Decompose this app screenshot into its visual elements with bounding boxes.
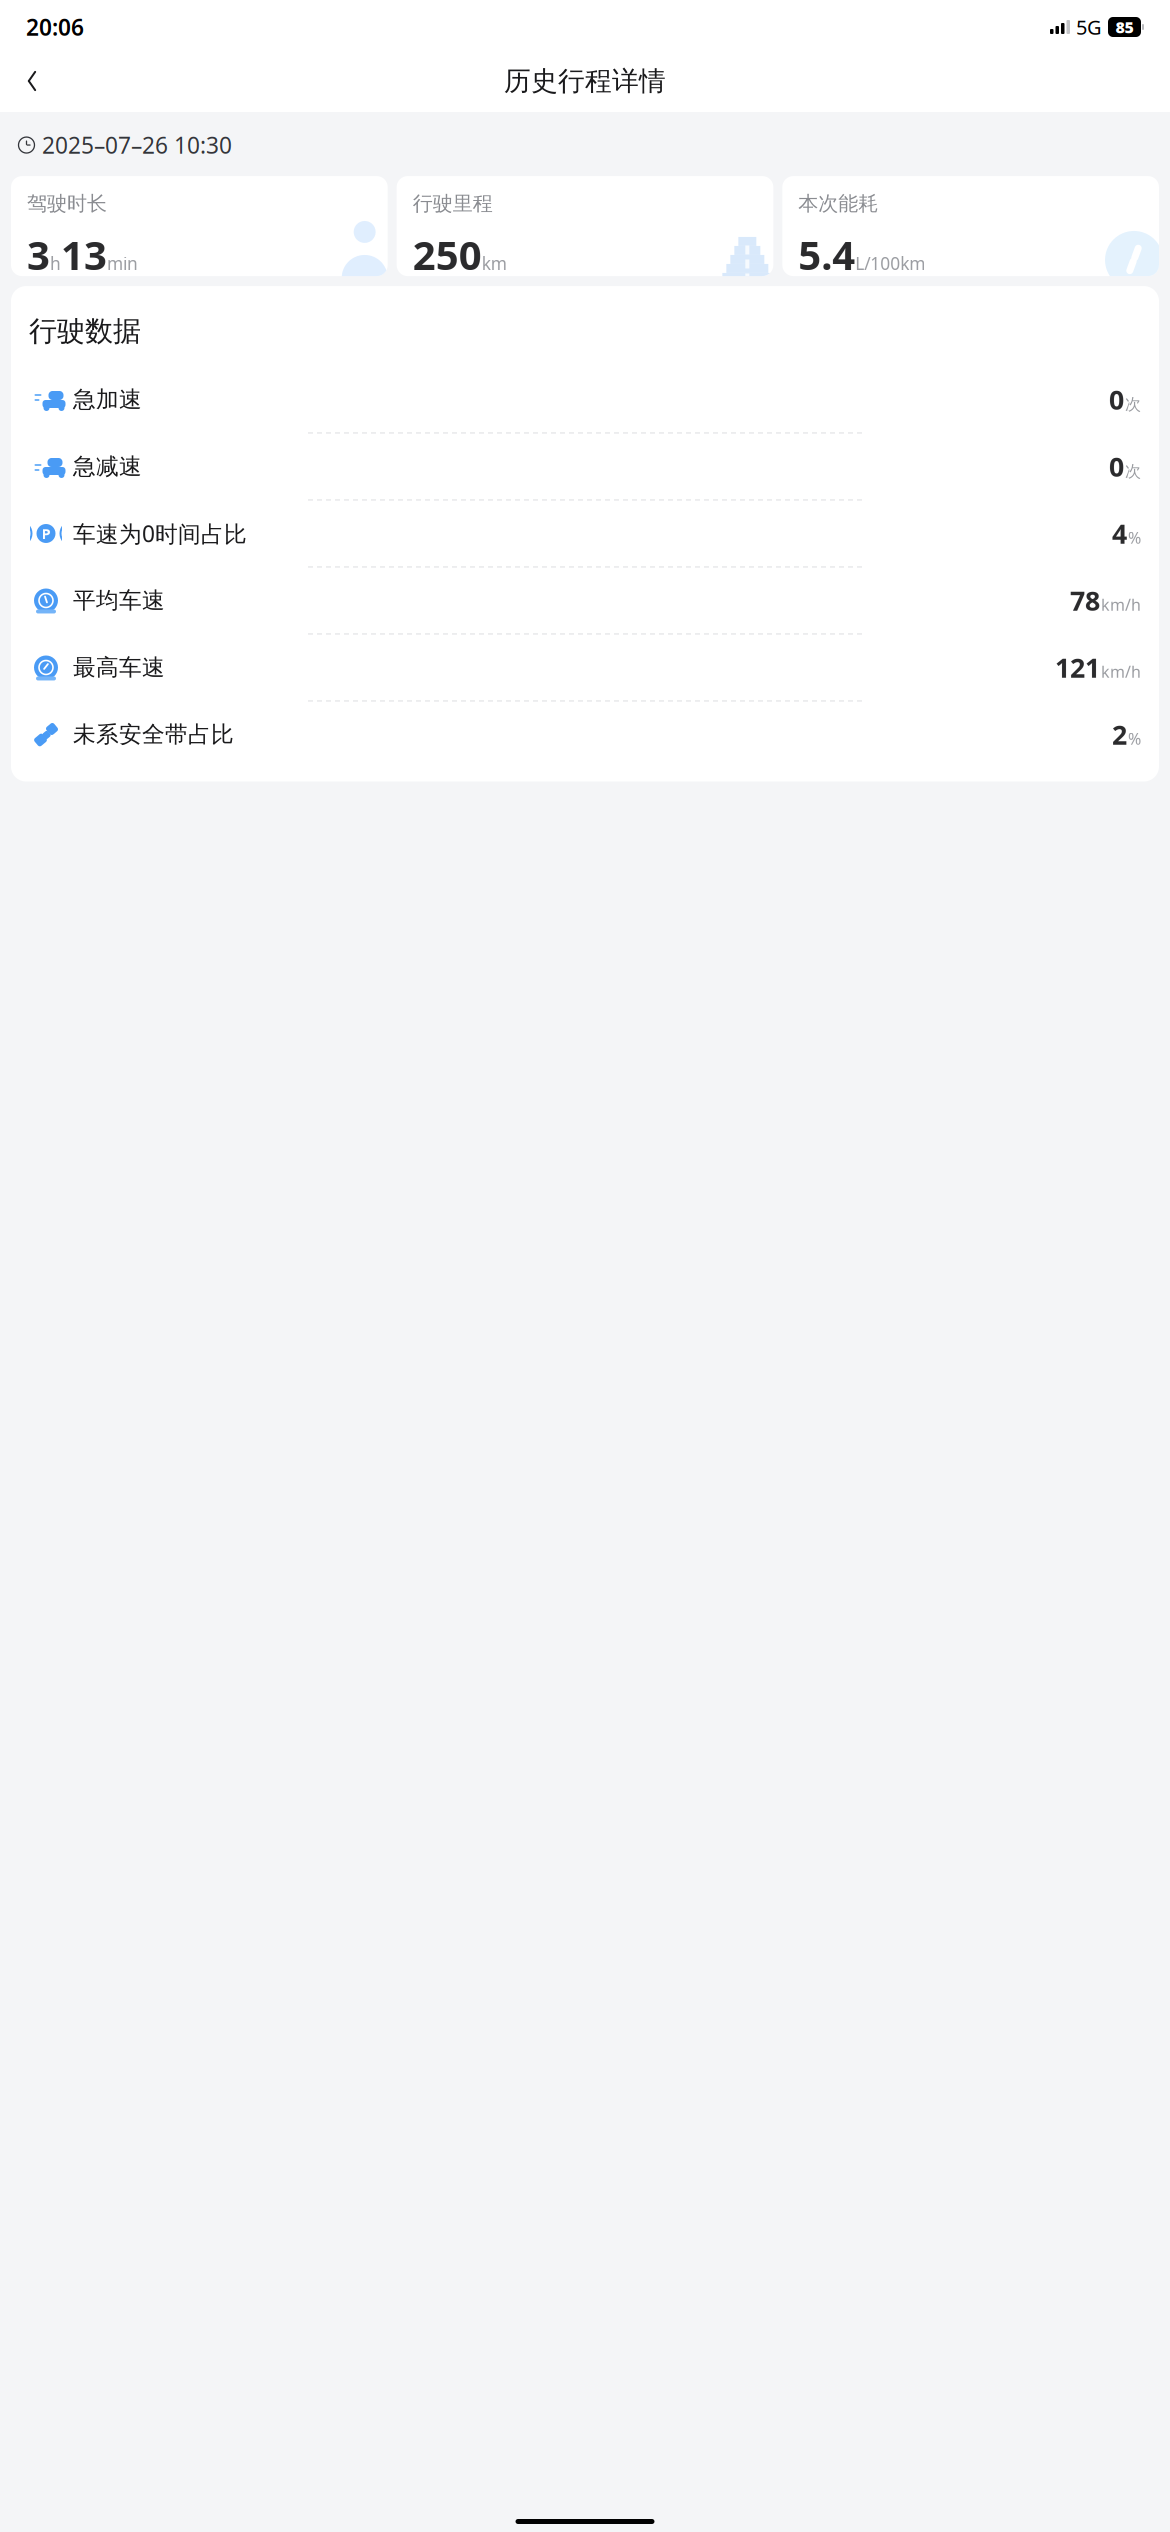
staticText: 5G bbox=[1076, 14, 1102, 40]
staticText: 急加速 bbox=[73, 386, 142, 413]
staticText: 平均车速 bbox=[73, 587, 165, 614]
staticText: 78 bbox=[1070, 583, 1100, 618]
staticText: 车速为0时间占比 bbox=[73, 518, 247, 548]
staticText: 3 bbox=[27, 228, 50, 281]
staticText: 次 bbox=[1125, 462, 1141, 481]
staticText: % bbox=[1128, 728, 1141, 749]
staticText: P bbox=[41, 524, 50, 543]
button[interactable]: 未系安全带占比 bbox=[11, 701, 1159, 767]
staticText: h bbox=[50, 252, 61, 275]
staticText: 20:06 bbox=[26, 12, 84, 42]
staticText: 5.4 bbox=[798, 228, 855, 281]
staticText: 13 bbox=[61, 228, 107, 281]
staticText: 2025–07–26 10:30 bbox=[42, 130, 232, 160]
staticText: 0 bbox=[1109, 449, 1124, 484]
staticText: 未系安全带占比 bbox=[73, 721, 234, 748]
staticText: 250 bbox=[413, 228, 482, 281]
button[interactable]: 平均车速 bbox=[11, 567, 1159, 633]
button[interactable]: 最高车速 bbox=[11, 634, 1159, 700]
button[interactable]: 返回 bbox=[10, 59, 54, 103]
button[interactable]: P bbox=[11, 500, 1159, 566]
staticText: km bbox=[482, 252, 507, 275]
staticText: 121 bbox=[1055, 650, 1100, 685]
staticText: 急减速 bbox=[73, 453, 142, 480]
staticText: 0 bbox=[1109, 382, 1124, 417]
staticText: 驾驶时长 bbox=[27, 191, 107, 216]
staticText: 行驶里程 bbox=[413, 191, 493, 216]
staticText: 行驶数据 bbox=[29, 314, 141, 348]
staticText: L/100km bbox=[855, 252, 925, 275]
button[interactable]: 急加速 bbox=[11, 366, 1159, 432]
staticText: min bbox=[107, 252, 138, 275]
staticText: 4 bbox=[1112, 516, 1127, 551]
staticText: 本次能耗 bbox=[798, 191, 878, 216]
staticText: km/h bbox=[1101, 661, 1141, 682]
staticText: km/h bbox=[1101, 594, 1141, 615]
button[interactable]: 急减速 bbox=[11, 433, 1159, 499]
staticText: % bbox=[1128, 527, 1141, 548]
staticText: 次 bbox=[1125, 395, 1141, 414]
staticText: 最高车速 bbox=[73, 654, 165, 681]
staticText: 85 bbox=[1115, 16, 1133, 38]
staticText: 2 bbox=[1112, 717, 1127, 752]
staticText: 历史行程详情 bbox=[504, 65, 666, 97]
